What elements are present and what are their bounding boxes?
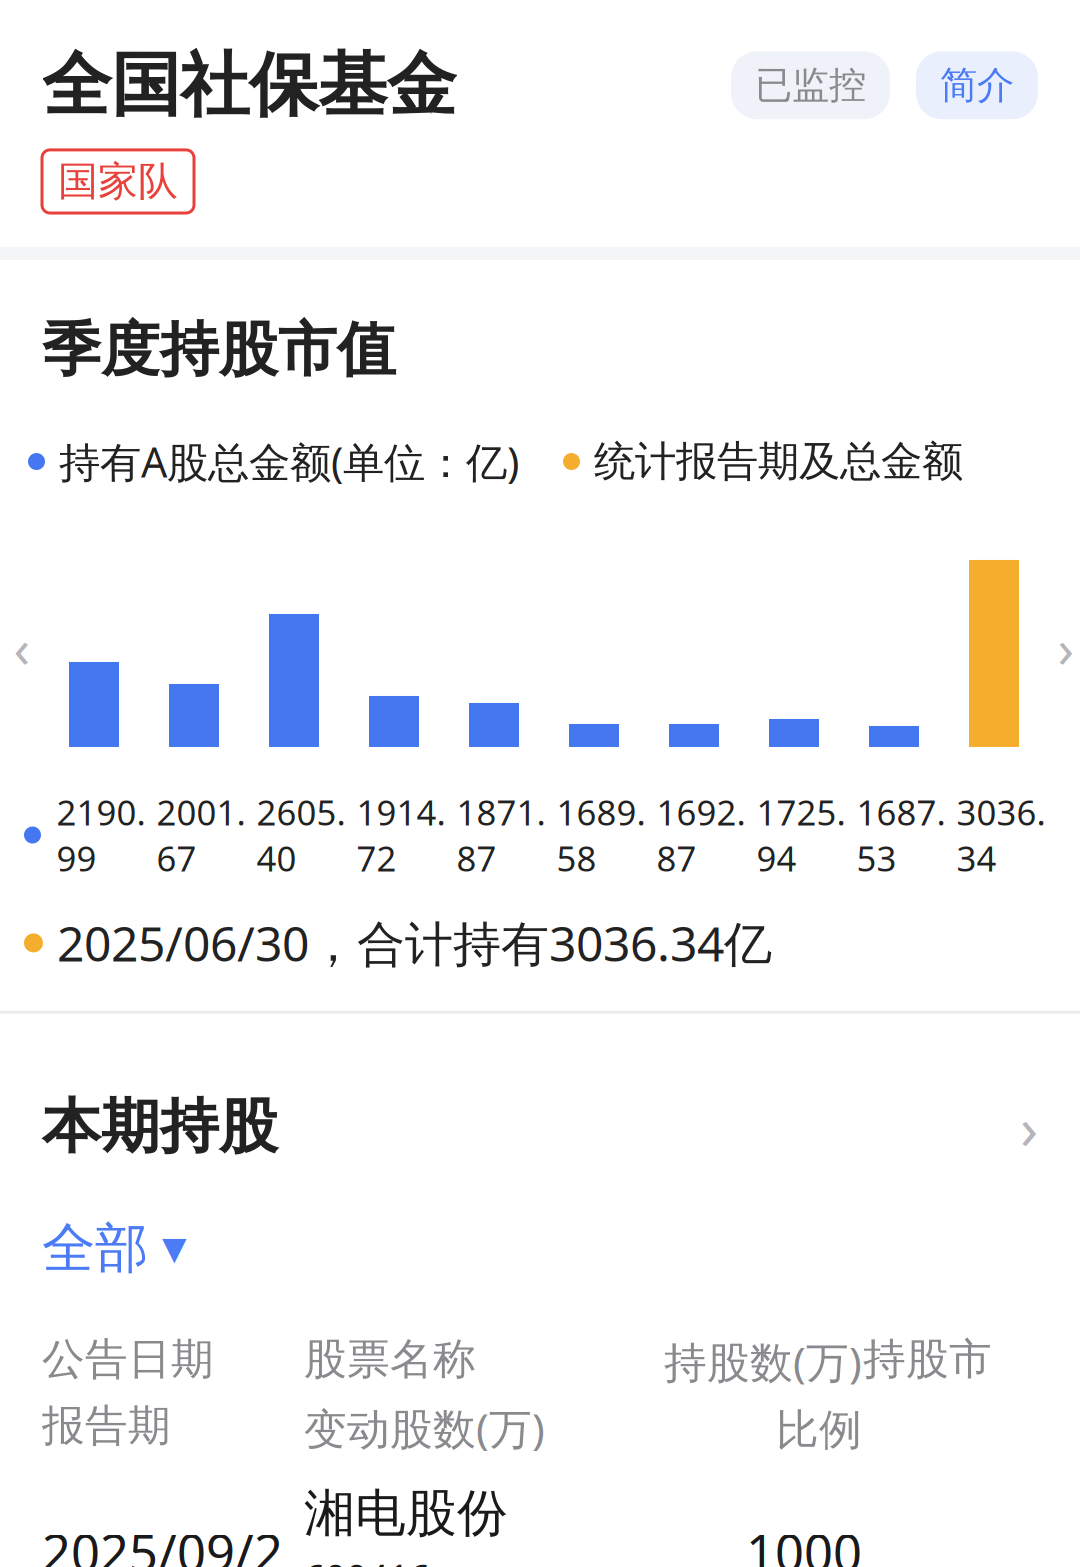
button[interactable]: 全部 [0,1166,187,1281]
staticText: 报告期 [42,1400,171,1452]
staticText: ‹ [13,612,30,682]
staticText: 简介 [940,62,1014,108]
button[interactable]: 下一页 [1044,517,1080,777]
staticText: 1000 [746,1518,862,1567]
staticText: 湘电股份 [304,1482,508,1544]
staticText: 比例 [776,1404,862,1456]
staticText: 2025/06/30，合计持有3036.34亿 [57,911,772,975]
staticText: 2025/09/24 [42,1518,283,1567]
staticText: ▼ [162,1230,187,1267]
staticText: 持股市 [863,1333,992,1386]
staticText: 全国社保基金 [42,43,456,128]
staticText: 已监控 [755,62,866,108]
button[interactable]: 本期持股 [0,1014,1080,1166]
staticText: 本期持股 [42,1091,278,1163]
button[interactable]: 简介 [916,51,1038,119]
staticText: 1692.87 [656,789,745,881]
staticText: 2605.40 [256,789,345,881]
staticText: 2001.67 [156,789,245,881]
staticText: 统计报告期及总金额 [594,436,963,487]
staticText: 1871.87 [456,789,545,881]
staticText: 1725.94 [756,789,845,881]
button[interactable]: 2025/09/24 [0,1482,992,1567]
staticText: 国家队 [58,157,178,206]
staticText: 公告日期 [42,1333,214,1386]
staticText: 变动股数(万) [304,1400,545,1456]
staticText: › [1020,1088,1038,1166]
staticText: 1687.53 [856,789,945,881]
staticText: 1914.72 [356,789,445,881]
staticText: 1689.58 [556,789,645,881]
staticText: 全部 [42,1216,148,1281]
staticText: 持股数(万) [664,1333,862,1390]
staticText: › [1057,612,1074,682]
staticText: 季度持股市值 [42,314,396,386]
staticText: 2190.99 [56,789,145,881]
staticText: 持有A股总金额(单位：亿) [59,434,519,489]
staticText: 3036.34 [956,789,1045,881]
button[interactable]: 已监控 [731,51,890,119]
staticText: 股票名称 [304,1333,476,1386]
staticText: 600416 [304,1552,430,1567]
button[interactable]: 上一页 [0,517,44,777]
